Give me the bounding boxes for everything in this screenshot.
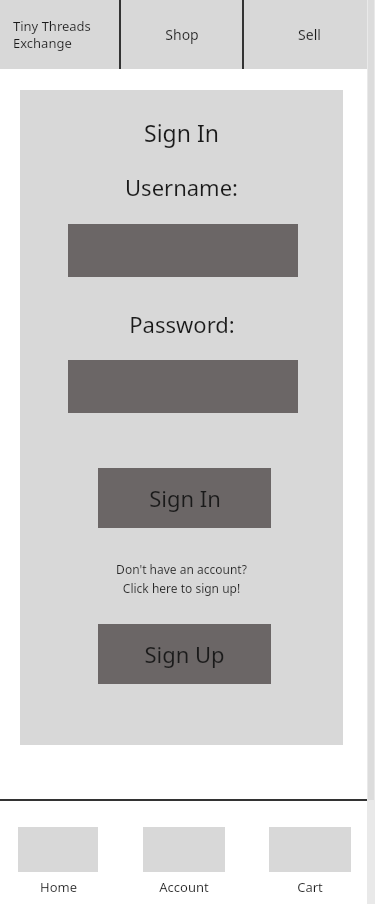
staticText: Sign In — [144, 117, 219, 148]
button[interactable]: Sign Up — [98, 624, 271, 684]
button[interactable]: Sign In — [98, 468, 271, 528]
staticText: Tiny Threads Exchange — [13, 17, 91, 52]
staticText: Home — [40, 878, 77, 896]
staticText: Account — [159, 878, 209, 896]
staticText: Sign Up — [144, 639, 225, 669]
staticText: Sell — [298, 25, 321, 44]
button[interactable]: Cart — [269, 827, 351, 896]
button[interactable]: Don't have an account? Click here to sig… — [20, 561, 343, 596]
button[interactable]: Sell — [243, 0, 375, 69]
staticText: Shop — [165, 25, 199, 44]
staticText: Password: — [129, 309, 235, 339]
button[interactable]: Shop — [120, 0, 243, 69]
button[interactable]: Home — [18, 827, 98, 896]
staticText: Sign In — [149, 483, 221, 513]
staticText: Cart — [297, 878, 323, 896]
staticText: Username: — [125, 172, 238, 202]
button[interactable]: Account — [143, 827, 225, 896]
button[interactable]: Tiny Threads Exchange — [0, 0, 120, 69]
